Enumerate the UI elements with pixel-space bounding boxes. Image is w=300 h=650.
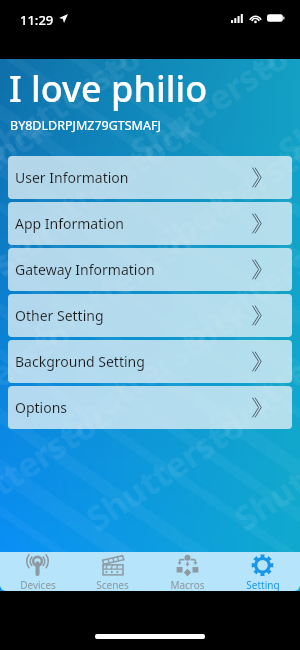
staticText: Shutterstock [25,196,233,357]
staticText: Shutterstock [0,288,111,449]
staticText: Gateway Information [15,260,155,279]
staticText: Shutterstock [295,104,300,265]
staticText: Scenes [96,578,129,591]
staticText: Shutterstock [0,380,137,541]
staticText: Shutterstock [173,196,300,357]
staticText: Shutterstock [225,380,300,541]
button[interactable]: User Information [8,156,292,199]
button[interactable]: Macros [150,552,225,591]
staticText: Shutterstock [0,59,33,173]
staticText: Shutterstock [95,59,300,81]
staticText: Shutterstock [0,59,155,81]
staticText: Macros [170,578,205,591]
staticText: Shutterstock [51,288,259,449]
staticText: Shutterstock [121,59,300,173]
staticText: Background Setting [15,352,145,371]
button[interactable]: Options [8,386,292,429]
staticText: Shutterstock [77,380,285,541]
button[interactable]: App Information [8,202,292,245]
staticText: Shutterstock [0,196,85,357]
button[interactable]: Background Setting [8,340,292,383]
staticText: Shutterstock [147,104,300,265]
button[interactable]: Other Setting [8,294,292,337]
staticText: Devices [20,578,56,591]
staticText: I love philio [9,64,208,113]
staticText: Shutterstock [0,104,59,265]
button[interactable]: Scenes [75,552,150,591]
button[interactable]: Gateway Information [8,248,292,291]
staticText: App Information [15,214,125,233]
staticText: Setting [246,578,280,591]
staticText: Options [15,398,68,417]
button[interactable]: Setting [225,552,300,591]
staticText: User Information [15,168,129,187]
staticText: 11:29 [20,11,54,25]
staticText: Other Setting [15,306,104,325]
staticText: Shutterstock [243,59,300,81]
button[interactable]: Devices [0,552,75,591]
staticText: Shutterstock [0,104,207,265]
staticText: Shutterstock [199,288,300,449]
staticText: BY8DLDRPJMZ79GTSMAFJ [10,117,161,134]
staticText: Shutterstock [0,59,181,173]
staticText: Shutterstock [269,59,300,173]
